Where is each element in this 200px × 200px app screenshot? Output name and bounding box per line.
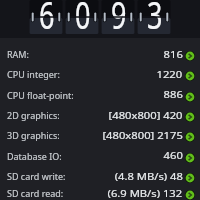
staticText: [480x800] 2175	[102, 129, 183, 142]
staticText: Database IO:	[7, 150, 62, 162]
staticText: CPU integer:	[7, 68, 60, 80]
staticText: 9	[111, 0, 127, 40]
other: Details	[185, 173, 195, 183]
other: Details	[185, 71, 195, 81]
other: Details	[185, 132, 195, 142]
button[interactable]: SD card write:	[0, 166, 200, 186]
staticText: 460	[164, 149, 183, 162]
other: Details	[185, 153, 195, 163]
staticText: 1220	[156, 68, 183, 81]
staticText: SD card read:	[7, 187, 64, 199]
staticText: [480x800] 420	[108, 109, 183, 122]
other: Details	[185, 51, 195, 61]
staticText: 3	[147, 0, 163, 40]
staticText: 886	[164, 88, 183, 101]
staticText: 0	[75, 0, 91, 40]
button[interactable]: 2D graphics:	[0, 105, 200, 125]
button[interactable]: Database IO:	[0, 145, 200, 166]
staticText: SD card write:	[7, 170, 65, 182]
button[interactable]: RAM:	[0, 44, 200, 64]
button[interactable]: SD card read:	[0, 186, 200, 200]
staticText: 6	[39, 0, 55, 40]
staticText: RAM:	[7, 48, 29, 60]
staticText: CPU float-point:	[7, 89, 74, 101]
other: Details	[185, 190, 195, 200]
staticText: 3D graphics:	[7, 129, 60, 141]
other: Details	[185, 112, 195, 122]
staticText: (6.9 MB/s) 132	[107, 187, 183, 199]
button[interactable]: CPU float-point:	[0, 84, 200, 105]
staticText: 816	[164, 48, 183, 61]
staticText: 2D graphics:	[7, 109, 60, 121]
staticText: (4.8 MB/s) 48	[115, 170, 183, 183]
button[interactable]: CPU integer:	[0, 64, 200, 84]
other: Details	[185, 92, 195, 102]
button[interactable]: 3D graphics:	[0, 125, 200, 145]
